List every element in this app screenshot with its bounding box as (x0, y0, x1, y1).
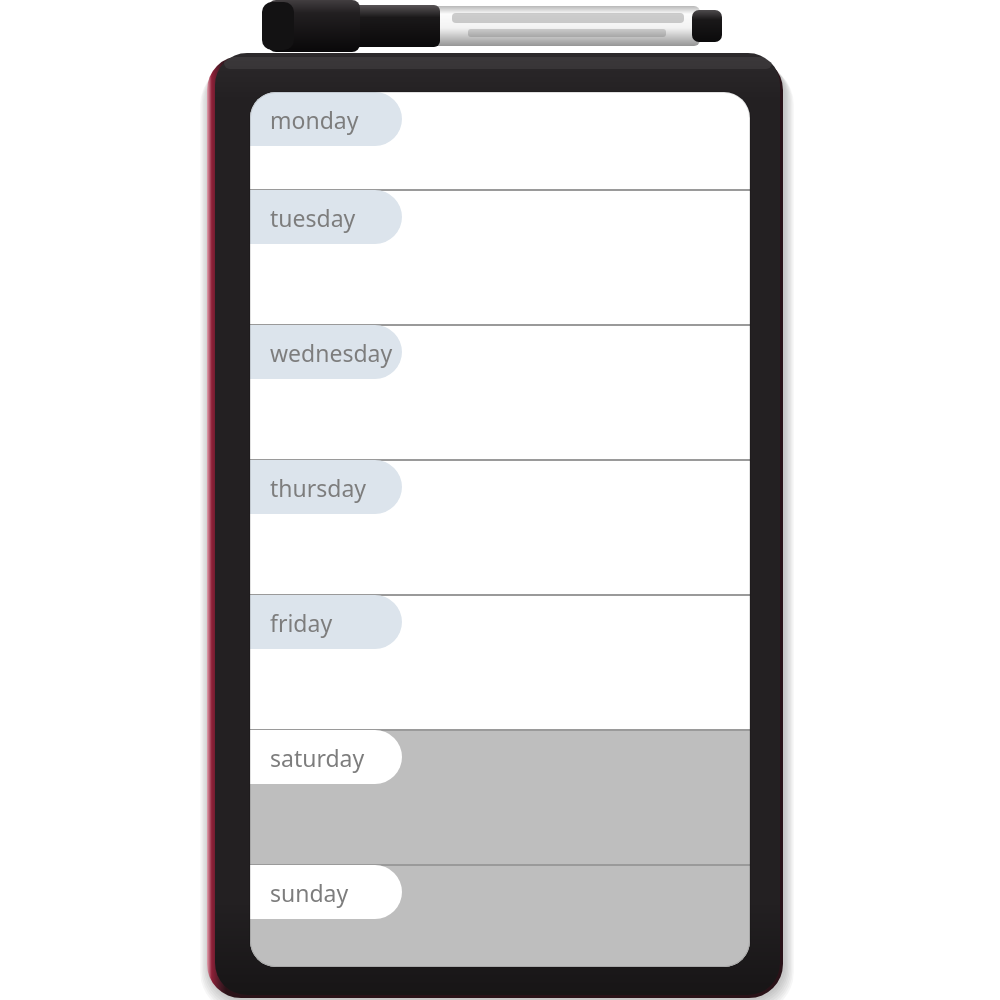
staticText: monday (270, 104, 359, 135)
button[interactable]: wednesday (230, 325, 402, 379)
staticText: tuesday (270, 202, 356, 233)
staticText: saturday (270, 742, 365, 773)
button[interactable]: thursday (230, 460, 402, 514)
button[interactable]: tuesday (230, 190, 402, 244)
staticText: thursday (270, 472, 367, 503)
staticText: wednesday (270, 337, 393, 368)
button[interactable]: saturday (230, 730, 402, 784)
button[interactable]: sunday (230, 865, 402, 919)
button[interactable]: friday (230, 595, 402, 649)
button[interactable]: monday (230, 92, 402, 146)
staticText: friday (270, 607, 333, 638)
staticText: sunday (270, 877, 349, 908)
